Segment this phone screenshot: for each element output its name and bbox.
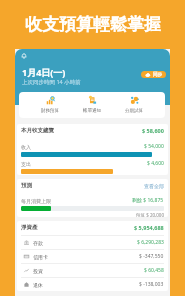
staticText: 本月收支總覽: [21, 127, 54, 134]
staticText: 1月4日(一): [22, 66, 66, 78]
staticText: 查看全部: [144, 183, 164, 189]
staticText: 收支預算輕鬆掌握: [25, 14, 161, 35]
button[interactable]: 財務預算: [39, 96, 61, 114]
staticText: 收入: [21, 144, 31, 150]
staticText: 淨資產: [21, 224, 38, 231]
staticText: 上次同步時間 14 小時前: [22, 78, 81, 86]
staticText: 信用卡: [33, 254, 48, 260]
staticText: 分期試算: [125, 108, 143, 114]
button[interactable]: 帳單通知: [81, 96, 103, 114]
button[interactable]: 投資: [21, 264, 164, 277]
staticText: $ 58,600: [142, 127, 164, 134]
staticText: 預測: [21, 182, 32, 189]
staticText: $ 6,290,283: [137, 239, 164, 246]
staticText: 帳單通知: [83, 108, 101, 114]
button[interactable]: 預測: [21, 182, 164, 189]
button[interactable]: Notifications: [21, 53, 27, 59]
button[interactable]: 信用卡: [21, 250, 164, 263]
staticText: $ 54,000: [144, 143, 164, 150]
staticText: 退休: [33, 282, 43, 288]
button[interactable]: 分期試算: [123, 96, 145, 114]
staticText: 每月消費上限: [21, 198, 51, 204]
staticText: 預算 $ 20,000: [136, 212, 164, 217]
staticText: 存款: [33, 240, 43, 246]
staticText: $ -138,003: [139, 281, 164, 288]
button[interactable]: 同步: [141, 71, 166, 78]
staticText: $ 4,600: [147, 160, 164, 167]
staticText: $ 60,458: [144, 267, 164, 274]
staticText: 財務預算: [41, 108, 59, 114]
staticText: $ 5,954,688: [134, 224, 164, 231]
staticText: 支出: [21, 161, 31, 167]
staticText: 同步: [153, 72, 162, 78]
button[interactable]: 存款: [21, 236, 164, 249]
button[interactable]: 退休: [21, 278, 164, 291]
staticText: 投資: [33, 268, 43, 274]
staticText: 剩餘 $ 16,875: [132, 197, 164, 204]
staticText: $ -347,550: [139, 253, 164, 260]
